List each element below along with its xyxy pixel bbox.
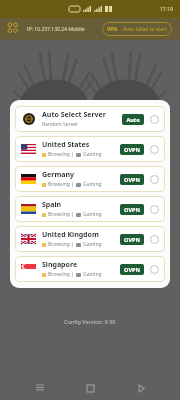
staticText: OVPN xyxy=(124,176,140,183)
button[interactable]: Menu xyxy=(8,23,21,36)
button[interactable]: Select Auto Select Server xyxy=(149,114,160,125)
staticText: Gaming xyxy=(83,181,102,188)
staticText: Random Server xyxy=(42,121,79,128)
staticText: Browsing | xyxy=(48,211,74,218)
staticText: Germany xyxy=(42,170,74,180)
staticText: OVPN xyxy=(124,266,140,273)
staticText: Browsing | xyxy=(48,151,74,158)
staticText: OVPN xyxy=(124,146,140,153)
staticText: VPN xyxy=(107,26,118,33)
staticText: Auto xyxy=(126,116,140,123)
staticText: Singapore xyxy=(42,260,78,270)
button[interactable]: OVPN xyxy=(120,204,144,215)
button[interactable]: Select United States xyxy=(149,144,160,155)
button[interactable]: VPN xyxy=(102,22,172,36)
staticText: Gaming xyxy=(83,241,102,248)
button[interactable]: Recents xyxy=(29,377,51,399)
button[interactable]: OVPN xyxy=(120,144,144,155)
staticText: Gaming xyxy=(83,151,102,158)
button[interactable]: Home xyxy=(79,377,101,399)
button[interactable]: Select Singapore xyxy=(149,264,160,275)
staticText: OVPN xyxy=(124,206,140,213)
staticText: Browsing | xyxy=(48,241,74,248)
staticText: Auto Select Server xyxy=(42,110,106,120)
button[interactable]: United States xyxy=(15,136,165,162)
staticText: Browsing | xyxy=(48,181,74,188)
button[interactable]: OVPN xyxy=(120,174,144,185)
button[interactable]: Auto xyxy=(122,114,144,125)
staticText: IP: 10.237.130.24-Mobile xyxy=(27,26,85,33)
button[interactable]: Select Spain xyxy=(149,204,160,215)
staticText: OVPN xyxy=(124,236,140,243)
button[interactable]: OVPN xyxy=(120,234,144,245)
staticText: Config Version: 9.90 xyxy=(64,318,116,325)
button[interactable]: United Kingdom xyxy=(15,226,165,252)
button[interactable]: Spain xyxy=(15,196,165,222)
button[interactable]: Auto Select Server xyxy=(15,106,165,132)
button[interactable]: Back xyxy=(130,377,152,399)
staticText: Auto failed to start xyxy=(123,26,167,33)
staticText: Gaming xyxy=(83,211,102,218)
staticText: United States xyxy=(42,140,90,150)
button[interactable]: OVPN xyxy=(120,264,144,275)
button[interactable]: Select Germany xyxy=(149,174,160,185)
button[interactable]: Germany xyxy=(15,166,165,192)
staticText: 17:19 xyxy=(160,6,173,13)
staticText: Browsing | xyxy=(48,271,74,278)
staticText: United Kingdom xyxy=(42,230,99,240)
staticText: Gaming xyxy=(83,271,102,278)
staticText: Spain xyxy=(42,200,62,210)
button[interactable]: Singapore xyxy=(15,256,165,282)
button[interactable]: Select United Kingdom xyxy=(149,234,160,245)
